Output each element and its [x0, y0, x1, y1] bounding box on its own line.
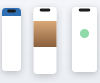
button[interactable] — [72, 7, 97, 72]
button[interactable] — [2, 8, 21, 71]
button[interactable] — [33, 7, 56, 74]
